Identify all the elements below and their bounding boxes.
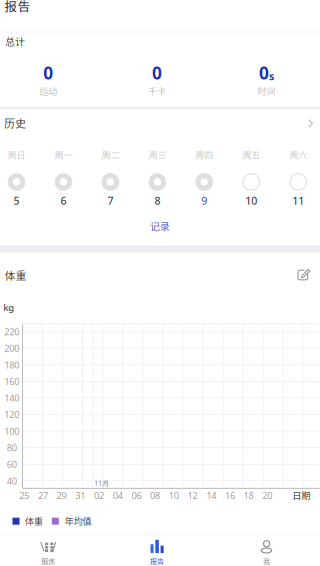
staticText: 0: [259, 61, 269, 84]
staticText: 日期: [292, 490, 310, 501]
staticText: 我: [263, 557, 270, 565]
staticText: 10: [169, 489, 179, 502]
staticText: 千卡: [148, 86, 166, 97]
staticText: 体重: [4, 269, 26, 282]
staticText: 报告: [5, 0, 31, 14]
staticText: 周二: [101, 150, 119, 160]
staticText: 周日: [7, 150, 25, 160]
staticText: 31: [75, 489, 85, 502]
staticText: 16: [225, 489, 235, 502]
staticText: 06: [131, 489, 141, 502]
staticText: 60: [7, 458, 17, 470]
staticText: 记录: [150, 220, 170, 232]
staticText: s: [269, 69, 274, 83]
staticText: 25: [19, 489, 29, 502]
staticText: 10: [245, 193, 257, 208]
button[interactable]: 编辑: [297, 268, 311, 281]
staticText: 8: [154, 193, 160, 208]
staticText: 14: [206, 489, 216, 502]
staticText: 200: [4, 342, 19, 354]
staticText: 年均值: [64, 516, 91, 527]
staticText: 9: [201, 193, 207, 208]
staticText: 锻炼: [41, 557, 55, 565]
staticText: 27: [38, 489, 48, 502]
button[interactable]: 记录: [0, 212, 320, 240]
staticText: 时间: [258, 86, 276, 97]
staticText: 100: [4, 425, 19, 437]
staticText: 0: [152, 61, 162, 84]
button[interactable]: 锻炼: [0, 535, 101, 566]
staticText: 120: [4, 408, 19, 421]
staticText: 历史: [4, 117, 26, 130]
staticText: 140: [4, 392, 19, 404]
button[interactable]: 历史: [0, 109, 320, 141]
staticText: 6: [60, 193, 66, 208]
button[interactable]: 报告: [104, 535, 210, 566]
staticText: 11: [292, 193, 304, 208]
staticText: 18: [244, 489, 254, 502]
staticText: 周三: [148, 150, 166, 160]
button[interactable]: 我: [214, 535, 320, 566]
staticText: 40: [7, 475, 17, 487]
staticText: kg: [3, 301, 14, 313]
staticText: 08: [150, 489, 160, 502]
staticText: 02: [94, 489, 104, 502]
staticText: 80: [7, 441, 17, 454]
staticText: 5: [13, 193, 19, 208]
staticText: 220: [4, 325, 19, 338]
staticText: 周五: [242, 150, 260, 160]
staticText: 20: [262, 489, 272, 502]
staticText: 04: [113, 489, 123, 502]
staticText: 周四: [195, 150, 213, 160]
staticText: 总计: [5, 36, 25, 48]
staticText: 180: [4, 359, 19, 371]
staticText: 周一: [54, 150, 72, 160]
staticText: 160: [4, 375, 19, 387]
staticText: 运动: [39, 86, 57, 97]
staticText: 12: [187, 489, 197, 502]
staticText: 周六: [289, 150, 307, 160]
staticText: 7: [107, 193, 113, 208]
staticText: 0: [43, 61, 53, 84]
staticText: 29: [57, 489, 67, 502]
staticText: 报告: [150, 557, 164, 565]
staticText: 体重: [25, 516, 43, 527]
staticText: 11月: [94, 479, 109, 487]
